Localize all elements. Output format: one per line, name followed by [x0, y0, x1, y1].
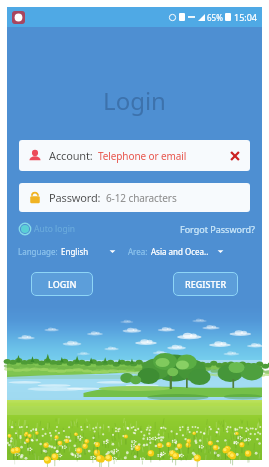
- button[interactable]: Account:: [19, 140, 250, 171]
- staticText: English: [61, 246, 89, 257]
- staticText: 65%: [207, 12, 223, 23]
- staticText: Password:: [49, 190, 101, 205]
- staticText: 6-12 characters: [106, 191, 177, 205]
- staticText: Language:: [18, 246, 58, 257]
- staticText: Account:: [49, 148, 93, 163]
- staticText: 15:04: [234, 11, 258, 23]
- staticText: Asia and Ocea..: [151, 246, 209, 257]
- staticText: Login: [7, 84, 262, 117]
- button[interactable]: Password:: [19, 183, 250, 212]
- staticText: Area:: [128, 246, 148, 257]
- button[interactable]: LOGIN: [31, 272, 93, 296]
- button[interactable]: Auto login: [19, 223, 76, 235]
- staticText: LOGIN: [48, 278, 77, 290]
- button[interactable]: English: [61, 246, 116, 257]
- button[interactable]: Asia and Ocea..: [151, 246, 224, 257]
- staticText: Telephone or email: [98, 149, 187, 163]
- button[interactable]: REGISTER: [173, 272, 238, 296]
- button[interactable]: Clear account: [228, 149, 242, 163]
- button[interactable]: Forgot Password?: [180, 223, 255, 235]
- staticText: Auto login: [34, 223, 76, 235]
- staticText: REGISTER: [185, 278, 227, 290]
